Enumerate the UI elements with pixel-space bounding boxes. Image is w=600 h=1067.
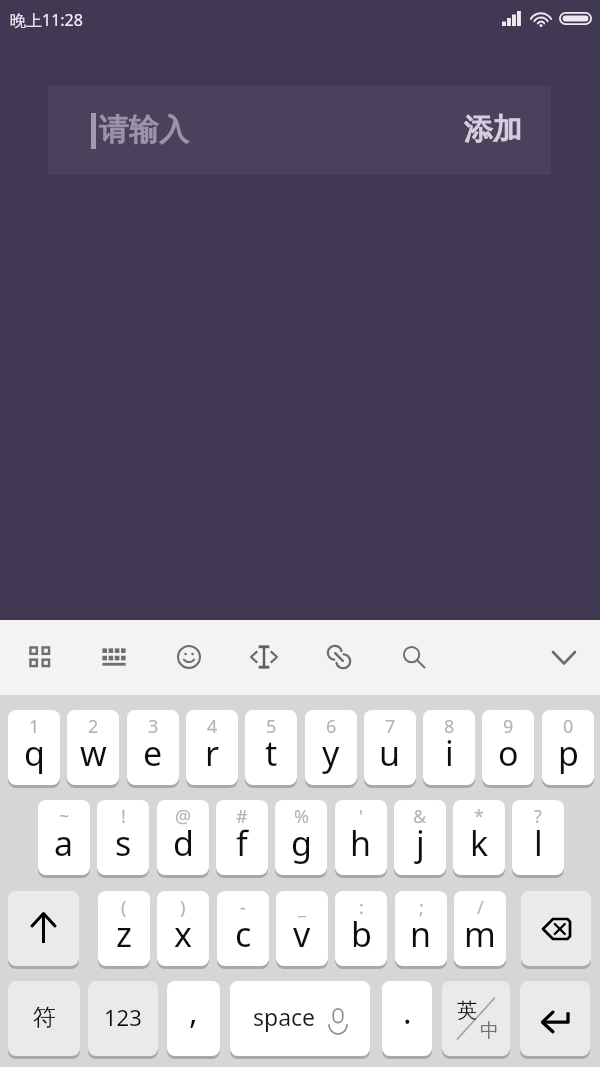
staticText: ; [419, 895, 424, 920]
staticText: y [322, 730, 340, 776]
staticText: : [359, 895, 364, 920]
staticText: k [470, 820, 489, 866]
button[interactable]: Layouts [14, 631, 66, 683]
staticText: d [173, 820, 194, 866]
staticText: t [265, 730, 278, 776]
staticText: 0 [563, 714, 574, 739]
staticText: a [54, 820, 74, 866]
button[interactable]: 3 [127, 710, 179, 785]
button[interactable]: ~ [38, 800, 90, 875]
staticText: 中 [480, 1019, 499, 1043]
button[interactable]: - [217, 891, 269, 966]
staticText: c [235, 911, 252, 957]
button[interactable]: Enter [520, 981, 590, 1056]
staticText: @ [175, 804, 192, 829]
staticText: 请输入 [99, 111, 189, 149]
button[interactable]: ) [157, 891, 209, 966]
staticText: 符 [33, 1003, 56, 1032]
button[interactable]: Shift [8, 891, 79, 966]
button[interactable]: 0 [542, 710, 594, 785]
staticText: ! [121, 804, 126, 829]
staticText: 1 [29, 714, 40, 739]
staticText: 9 [503, 714, 514, 739]
button[interactable]: 123 [88, 981, 158, 1056]
button[interactable]: 6 [305, 710, 357, 785]
staticText: 英 [457, 998, 477, 1023]
staticText: , [189, 990, 198, 1034]
button[interactable]: . [382, 981, 432, 1056]
staticText: 7 [385, 714, 396, 739]
button[interactable]: ! [97, 800, 149, 875]
staticText: 123 [104, 1002, 142, 1032]
staticText: ' [359, 804, 364, 829]
button[interactable]: % [275, 800, 327, 875]
staticText: * [474, 804, 484, 829]
staticText: w [80, 730, 107, 776]
staticText: f [236, 820, 248, 866]
staticText: m [464, 911, 496, 957]
staticText: space [253, 1001, 316, 1032]
staticText: r [205, 730, 220, 776]
button[interactable]: ; [395, 891, 447, 966]
button[interactable]: & [394, 800, 446, 875]
staticText: v [293, 911, 311, 957]
staticText: l [534, 820, 543, 866]
button[interactable]: Keyboard [88, 631, 140, 683]
button[interactable]: Hide keyboard [538, 631, 590, 683]
staticText: b [351, 911, 372, 957]
staticText: - [240, 895, 246, 920]
staticText: _ [298, 895, 306, 920]
button[interactable]: Space [230, 981, 370, 1056]
button[interactable]: 4 [186, 710, 238, 785]
button[interactable]: @ [157, 800, 209, 875]
staticText: p [558, 730, 579, 776]
button[interactable]: 9 [482, 710, 534, 785]
button[interactable]: 请输入 [48, 86, 551, 175]
button[interactable]: _ [276, 891, 328, 966]
button[interactable]: 1 [8, 710, 60, 785]
staticText: ) [180, 895, 186, 920]
staticText: i [445, 730, 454, 776]
button[interactable]: 5 [245, 710, 297, 785]
staticText: ~ [59, 804, 70, 829]
staticText: . [403, 990, 412, 1034]
staticText: n [410, 911, 432, 957]
staticText: ? [534, 804, 542, 829]
button[interactable]: Backspace [521, 891, 591, 966]
button[interactable]: ( [98, 891, 150, 966]
staticText: j [416, 820, 425, 866]
staticText: / [477, 895, 484, 920]
staticText: e [143, 730, 163, 776]
button[interactable]: Search [388, 631, 440, 683]
staticText: ( [121, 895, 127, 920]
button[interactable]: Switch language [442, 981, 510, 1056]
button[interactable]: Clipboard [313, 631, 365, 683]
staticText: % [294, 804, 309, 829]
button[interactable]: 8 [423, 710, 475, 785]
staticText: 5 [266, 714, 277, 739]
staticText: o [498, 730, 519, 776]
button[interactable]: * [453, 800, 505, 875]
staticText: 晚上11:28 [10, 9, 83, 31]
button[interactable]: , [167, 981, 220, 1056]
button[interactable]: 7 [364, 710, 416, 785]
staticText: q [24, 730, 45, 776]
staticText: z [116, 911, 132, 957]
staticText: 2 [88, 714, 99, 739]
staticText: h [350, 820, 372, 866]
staticText: & [413, 804, 427, 829]
button[interactable]: 符 [8, 981, 80, 1056]
button[interactable]: 2 [67, 710, 119, 785]
button[interactable]: : [335, 891, 387, 966]
button[interactable]: ' [335, 800, 387, 875]
button[interactable]: Emoji [163, 631, 215, 683]
staticText: 4 [207, 714, 218, 739]
staticText: 6 [326, 714, 337, 739]
staticText: 添加 [464, 111, 522, 148]
staticText: s [115, 820, 132, 866]
button[interactable]: # [216, 800, 268, 875]
button[interactable]: Move cursor [238, 631, 290, 683]
staticText: x [174, 911, 192, 957]
button[interactable]: / [454, 891, 506, 966]
button[interactable]: ? [512, 800, 564, 875]
